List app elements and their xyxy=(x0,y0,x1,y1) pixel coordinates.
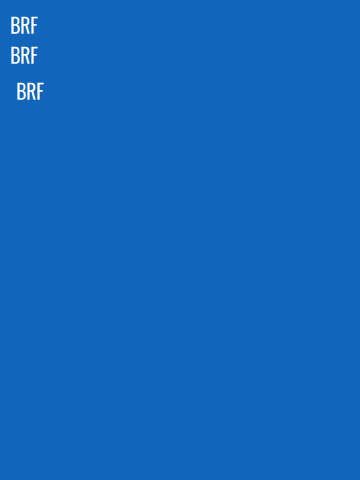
staticText: BRF xyxy=(10,10,38,40)
staticText: BRF xyxy=(10,40,38,70)
staticText: BRF xyxy=(16,76,44,106)
